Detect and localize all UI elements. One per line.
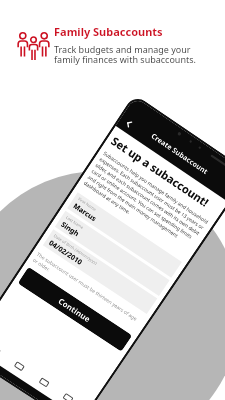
button[interactable]: Tab 3 bbox=[35, 374, 53, 391]
button[interactable]: Last Name bbox=[55, 211, 170, 296]
staticText: 04/02/2010 bbox=[47, 238, 84, 268]
staticText: The subaccount user must be thirteen yea… bbox=[31, 251, 143, 331]
staticText: Track budgets and manage your family fin… bbox=[54, 43, 202, 66]
staticText: First Name bbox=[77, 196, 98, 212]
staticText: Set up a subaccount! bbox=[108, 133, 212, 210]
button[interactable]: First Name bbox=[67, 192, 182, 278]
staticText: Marcus bbox=[71, 201, 98, 224]
staticText: Family Subaccounts bbox=[54, 24, 163, 39]
button[interactable]: Tab 4 bbox=[59, 389, 77, 400]
staticText: Create Subaccount bbox=[149, 131, 210, 177]
button[interactable]: Tab 2 bbox=[10, 357, 28, 375]
staticText: Singh bbox=[59, 220, 81, 239]
staticText: Last Name bbox=[65, 215, 85, 231]
button[interactable]: Continue bbox=[18, 267, 132, 352]
button[interactable]: Back bbox=[122, 117, 136, 131]
staticText: Continue bbox=[56, 295, 93, 324]
staticText: Subaccounts help you manage family and h… bbox=[82, 150, 210, 255]
staticText: Date of Birth (dd/mm/yyyy) bbox=[53, 233, 98, 266]
button[interactable]: Date of Birth (dd/mm/yyyy) bbox=[43, 229, 157, 314]
button[interactable]: Tab 1 bbox=[0, 342, 4, 359]
